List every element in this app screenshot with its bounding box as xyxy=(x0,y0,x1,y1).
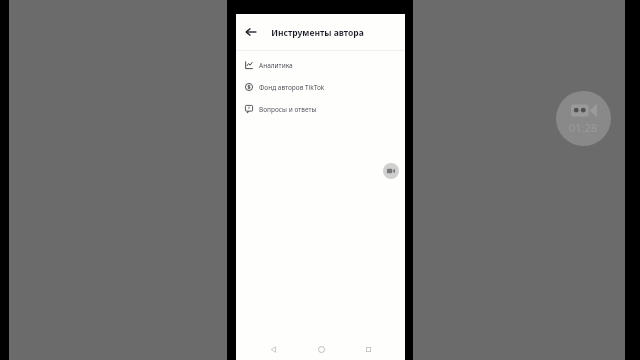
staticText: Вопросы и ответы xyxy=(259,105,317,114)
button[interactable]: Аналитика xyxy=(236,54,405,76)
button[interactable]: Недавние xyxy=(358,339,378,359)
button[interactable]: Запись экрана xyxy=(383,163,399,179)
staticText: 01:28 xyxy=(569,120,598,135)
button[interactable]: Назад xyxy=(240,21,262,43)
button[interactable]: Фонд авторов TikTok xyxy=(236,76,405,98)
button[interactable]: Назад xyxy=(263,339,283,359)
staticText: Аналитика xyxy=(259,61,293,70)
staticText: Инструменты автора xyxy=(271,27,364,39)
staticText: Фонд авторов TikTok xyxy=(259,83,325,92)
button[interactable]: Вопросы и ответы xyxy=(236,98,405,120)
button[interactable]: Главный экран xyxy=(311,339,331,359)
button[interactable]: Запись экрана 01:28 xyxy=(556,91,611,146)
